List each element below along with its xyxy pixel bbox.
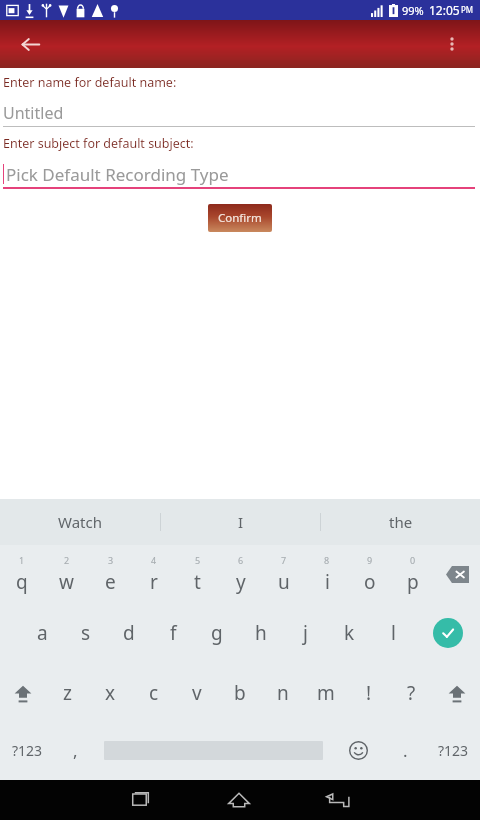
staticText: g: [211, 620, 223, 646]
staticText: f: [170, 620, 177, 646]
button[interactable]: l: [371, 603, 415, 663]
staticText: z: [63, 680, 72, 706]
staticText: 2: [64, 554, 70, 566]
button[interactable]: Enter: [415, 603, 480, 663]
staticText: Enter subject for default subject:: [3, 135, 194, 152]
button[interactable]: f: [151, 603, 195, 663]
button[interactable]: Backspace: [434, 545, 480, 603]
button[interactable]: ?: [390, 663, 433, 723]
button[interactable]: Pick Default Recording Type: [3, 161, 475, 187]
staticText: .: [403, 739, 408, 762]
button[interactable]: Shift: [0, 663, 46, 723]
button[interactable]: s: [64, 603, 107, 663]
staticText: m: [317, 680, 335, 706]
button[interactable]: Watch: [0, 499, 160, 545]
staticText: ?: [407, 680, 416, 706]
button[interactable]: 6: [219, 545, 262, 603]
button[interactable]: k: [327, 603, 371, 663]
button[interactable]: 0: [391, 545, 434, 603]
staticText: 8: [324, 554, 330, 566]
button[interactable]: Confirm: [208, 204, 272, 232]
button[interactable]: 1: [0, 545, 44, 603]
button[interactable]: ?123: [0, 723, 55, 778]
button[interactable]: j: [283, 603, 327, 663]
staticText: 3: [108, 554, 114, 566]
button[interactable]: More options: [432, 24, 472, 64]
staticText: Pick Default Recording Type: [6, 163, 229, 186]
button[interactable]: the: [321, 499, 480, 545]
button[interactable]: n: [261, 663, 304, 723]
staticText: j: [303, 620, 308, 646]
staticText: x: [105, 680, 116, 706]
button[interactable]: .: [385, 723, 426, 778]
button[interactable]: 4: [132, 545, 176, 603]
button[interactable]: Recents: [90, 780, 189, 820]
button[interactable]: 9: [348, 545, 391, 603]
button[interactable]: 2: [44, 545, 88, 603]
staticText: t: [194, 569, 201, 595]
button[interactable]: !: [347, 663, 390, 723]
staticText: q: [16, 569, 28, 595]
button[interactable]: Shift: [433, 663, 480, 723]
staticText: w: [59, 569, 74, 595]
button[interactable]: b: [218, 663, 261, 723]
staticText: y: [236, 569, 246, 595]
staticText: ?123: [12, 741, 43, 760]
staticText: I: [238, 512, 244, 532]
staticText: 0: [410, 554, 416, 566]
button[interactable]: Space: [96, 723, 331, 778]
staticText: PM: [461, 4, 474, 15]
button[interactable]: Emoji: [331, 723, 385, 778]
button[interactable]: Untitled: [3, 100, 475, 126]
button[interactable]: a: [21, 603, 64, 663]
staticText: !: [366, 680, 372, 706]
staticText: h: [255, 620, 267, 646]
staticText: b: [234, 680, 246, 706]
button[interactable]: I: [161, 499, 320, 545]
staticText: ,: [73, 739, 78, 762]
button[interactable]: Back: [289, 780, 389, 820]
button[interactable]: x: [89, 663, 132, 723]
button[interactable]: z: [46, 663, 89, 723]
button[interactable]: d: [107, 603, 151, 663]
button[interactable]: 5: [176, 545, 219, 603]
staticText: n: [277, 680, 289, 706]
staticText: ?123: [438, 741, 469, 760]
staticText: 9: [367, 554, 373, 566]
staticText: s: [81, 620, 91, 646]
button[interactable]: ?123: [426, 723, 480, 778]
staticText: Confirm: [218, 210, 262, 226]
staticText: r: [150, 569, 158, 595]
staticText: e: [105, 569, 116, 595]
staticText: v: [192, 680, 202, 706]
staticText: Untitled: [3, 102, 64, 124]
staticText: o: [364, 569, 376, 595]
staticText: l: [391, 620, 396, 646]
staticText: c: [149, 680, 159, 706]
staticText: 5: [195, 554, 201, 566]
staticText: 7: [281, 554, 287, 566]
button[interactable]: 7: [262, 545, 305, 603]
button[interactable]: 8: [305, 545, 348, 603]
button[interactable]: ,: [55, 723, 96, 778]
button[interactable]: m: [304, 663, 347, 723]
staticText: the: [389, 512, 413, 532]
staticText: 4: [151, 554, 157, 566]
staticText: 99%: [402, 3, 424, 18]
button[interactable]: v: [175, 663, 218, 723]
staticText: 6: [238, 554, 244, 566]
staticText: a: [37, 620, 48, 646]
button[interactable]: Home: [189, 780, 289, 820]
button[interactable]: Back: [10, 24, 50, 64]
staticText: i: [325, 569, 330, 595]
staticText: u: [278, 569, 290, 595]
staticText: 12:05: [429, 2, 460, 18]
button[interactable]: 3: [88, 545, 132, 603]
staticText: p: [407, 569, 419, 595]
button[interactable]: h: [239, 603, 283, 663]
staticText: d: [123, 620, 135, 646]
button[interactable]: g: [195, 603, 239, 663]
button[interactable]: c: [132, 663, 175, 723]
staticText: Watch: [58, 512, 102, 532]
staticText: 1: [19, 554, 25, 566]
